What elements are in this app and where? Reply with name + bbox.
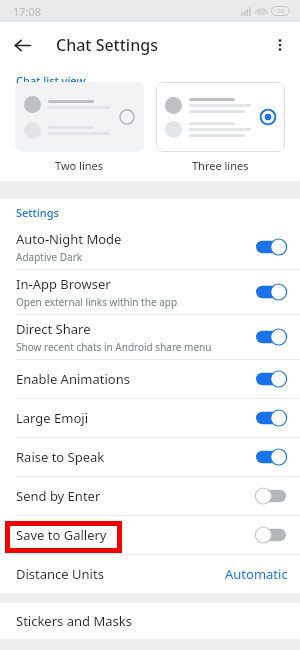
button[interactable]: Stickers and Masks	[0, 603, 300, 639]
staticText: Show recent chats in Android share menu	[16, 340, 212, 354]
button[interactable]: Save to Gallery	[0, 516, 300, 554]
button[interactable]	[254, 408, 288, 428]
button[interactable]	[254, 486, 288, 506]
staticText: Chat Settings	[56, 34, 158, 56]
staticText: Stickers and Masks	[16, 612, 132, 630]
staticText: Save to Gallery	[16, 526, 107, 544]
staticText: 70	[277, 7, 284, 15]
staticText: Large Emoji	[16, 409, 89, 427]
button[interactable]: Enable Animations	[0, 360, 300, 398]
button[interactable]	[254, 369, 288, 389]
button[interactable]: Raise to Speak	[0, 438, 300, 476]
button[interactable]: Large Emoji	[0, 399, 300, 437]
button[interactable]	[254, 282, 288, 302]
staticText: Auto-Night Mode	[16, 230, 122, 248]
button[interactable]	[254, 447, 288, 467]
staticText: Distance Units	[16, 565, 104, 583]
staticText: Adaptive Dark	[16, 250, 83, 264]
staticText: Send by Enter	[16, 487, 101, 505]
button[interactable]: Distance Units	[0, 555, 300, 593]
button[interactable]	[254, 237, 288, 257]
staticText: Two lines	[55, 158, 104, 173]
staticText: In-App Browser	[16, 275, 111, 293]
button[interactable]: More options	[264, 29, 296, 61]
staticText: Direct Share	[16, 320, 91, 338]
staticText: 17:08	[13, 4, 42, 19]
button[interactable]	[254, 525, 288, 545]
staticText: Settings	[16, 205, 59, 220]
button[interactable]: Auto-Night Mode	[0, 225, 300, 269]
staticText: Enable Animations	[16, 370, 130, 388]
staticText: Open external links within the app	[16, 295, 178, 309]
button[interactable]	[156, 82, 285, 152]
staticText: Three lines	[192, 158, 249, 173]
button[interactable]	[15, 82, 144, 152]
button[interactable]: Send by Enter	[0, 477, 300, 515]
button[interactable]: Back	[8, 31, 36, 59]
button[interactable]: Direct Share	[0, 315, 300, 359]
button[interactable]	[254, 327, 288, 347]
staticText: Raise to Speak	[16, 448, 105, 466]
staticText: Automatic	[225, 565, 288, 583]
staticText: Chat list view	[16, 73, 86, 83]
button[interactable]: In-App Browser	[0, 270, 300, 314]
